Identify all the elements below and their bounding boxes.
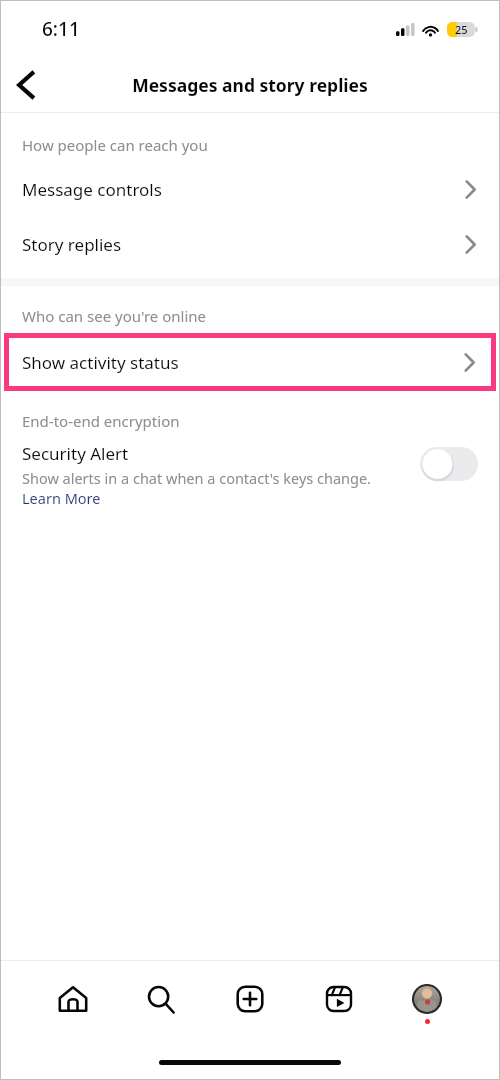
staticText: Show alerts in a chat when a contact's k… xyxy=(22,468,410,509)
staticText: 25 xyxy=(455,22,468,37)
staticText: Show activity status xyxy=(22,351,179,374)
button[interactable]: Profile xyxy=(401,981,453,1033)
button[interactable]: Show activity status xyxy=(4,333,496,391)
button[interactable]: Security Alert xyxy=(0,438,500,519)
staticText: How people can reach you xyxy=(22,135,208,155)
staticText: 6:11 xyxy=(42,16,80,42)
button[interactable]: Search xyxy=(135,981,187,1033)
staticText: Messages and story replies xyxy=(132,73,368,97)
staticText: Who can see you're online xyxy=(22,306,206,326)
staticText: Story replies xyxy=(22,233,122,256)
button[interactable]: Security Alert toggle xyxy=(420,447,478,481)
button[interactable]: Story replies xyxy=(0,217,500,272)
button[interactable]: Home xyxy=(47,981,99,1033)
button[interactable]: Reels xyxy=(313,981,365,1033)
button[interactable]: Message controls xyxy=(0,162,500,217)
button[interactable]: Back xyxy=(4,63,48,107)
staticText: Security Alert xyxy=(22,442,129,465)
button[interactable]: Create xyxy=(224,981,276,1033)
staticText: End-to-end encryption xyxy=(22,411,180,431)
staticText: Message controls xyxy=(22,178,162,201)
